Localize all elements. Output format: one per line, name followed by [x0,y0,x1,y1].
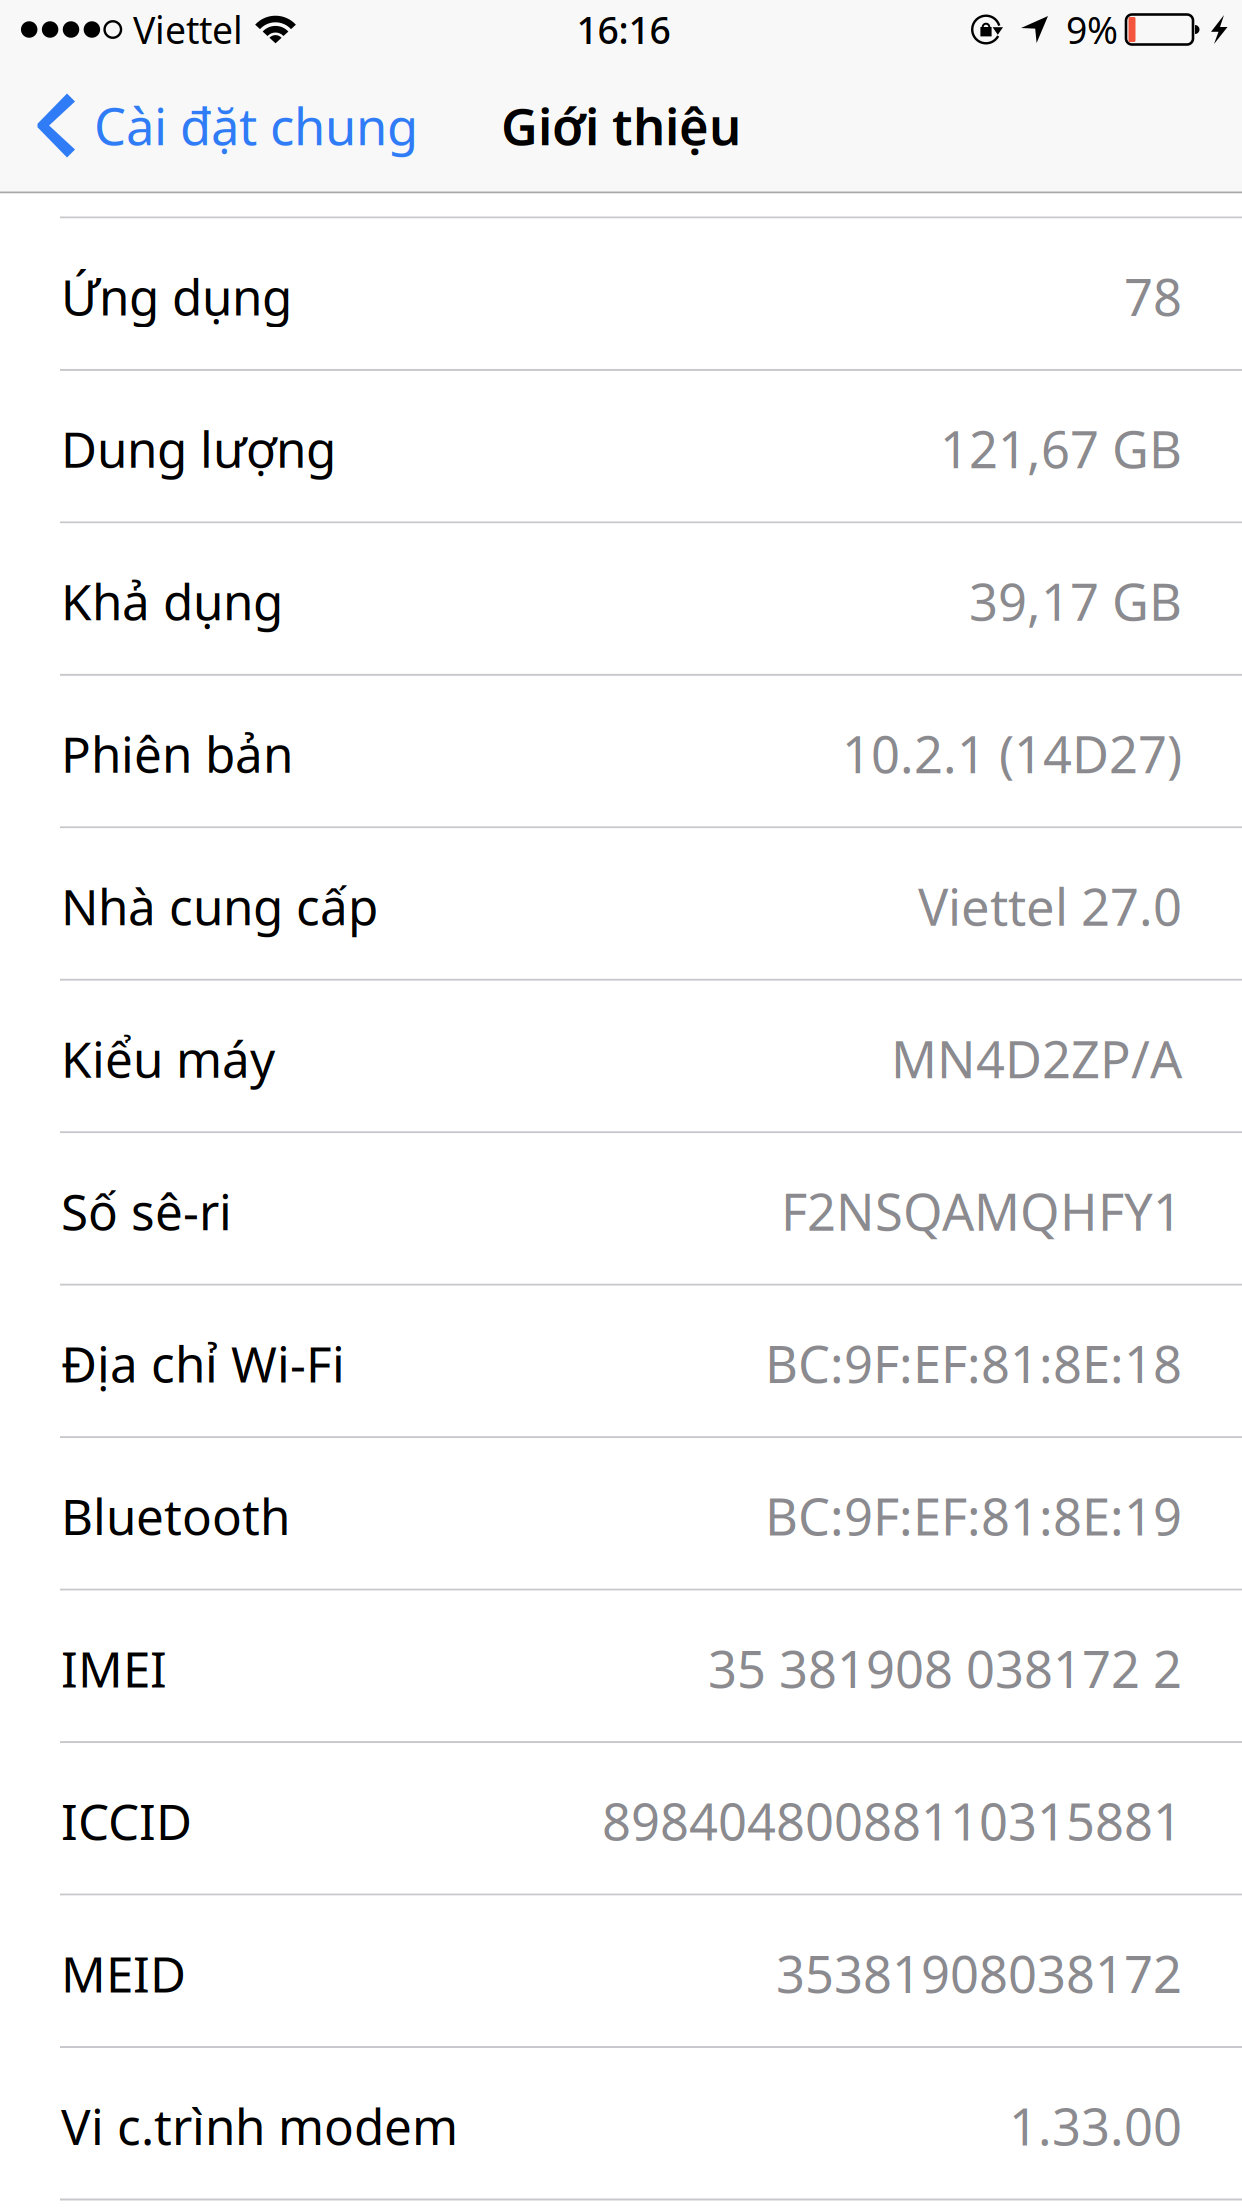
button[interactable]: Nhà cung cấp [0,828,1242,981]
staticText: Vi c.trình modem [61,2093,458,2158]
staticText: 1.33.00 [1009,2092,1182,2159]
button[interactable]: IMEI [0,1591,1242,1743]
staticText: Bluetooth [61,1483,290,1549]
button[interactable]: Khả dụng [0,523,1242,676]
button[interactable]: Ứng dụng [0,218,1242,371]
button[interactable]: MEID [0,1896,1242,2048]
staticText: 10.2.1 (14D27) [842,720,1182,787]
staticText: Viettel 27.0 [918,872,1182,940]
staticText: BC:9F:EF:81:8E:18 [765,1330,1182,1397]
staticText: 89840480088110315881 [602,1787,1182,1854]
staticText: Ứng dụng [61,263,292,329]
staticText: 9% [1066,5,1118,54]
staticText: 35 381908 038172 2 [708,1635,1182,1702]
button[interactable]: ICCID [0,1743,1242,1896]
button[interactable]: Bluetooth [0,1438,1242,1591]
button[interactable]: Địa chỉ Wi-Fi [0,1286,1242,1438]
staticText: IMEI [61,1636,167,1701]
button[interactable]: Dung lượng [0,371,1242,523]
staticText: F2NSQAMQHFY1 [781,1177,1182,1245]
staticText: Viettel [133,5,243,54]
staticText: MN4D2ZP/A [891,1025,1182,1092]
staticText: Dung lượng [61,416,336,481]
button[interactable]: Số sê-ri [0,1133,1242,1286]
staticText: Cài đặt chung [94,92,418,159]
staticText: 121,67 GB [940,415,1182,482]
staticText: 78 [1124,263,1182,330]
staticText: 35381908038172 [776,1940,1182,2007]
staticText: BC:9F:EF:81:8E:19 [765,1482,1182,1550]
button[interactable]: Cài đặt chung [0,59,438,191]
staticText: Phiên bản [61,721,293,786]
staticText: 16:16 [576,5,670,54]
staticText: Địa chỉ Wi-Fi [61,1331,345,1396]
button[interactable]: Kiểu máy [0,981,1242,1133]
staticText: Khả dụng [61,568,283,634]
staticText: 39,17 GB [969,567,1182,635]
staticText: Số sê-ri [61,1178,232,1244]
staticText: MEID [61,1940,186,2006]
staticText: ICCID [61,1788,192,1854]
button[interactable]: Vi c.trình modem [0,2048,1242,2200]
button[interactable]: Phiên bản [0,676,1242,828]
staticText: Kiểu máy [61,1026,275,1091]
staticText: Nhà cung cấp [61,873,378,939]
staticText: Giới thiệu [501,92,741,159]
